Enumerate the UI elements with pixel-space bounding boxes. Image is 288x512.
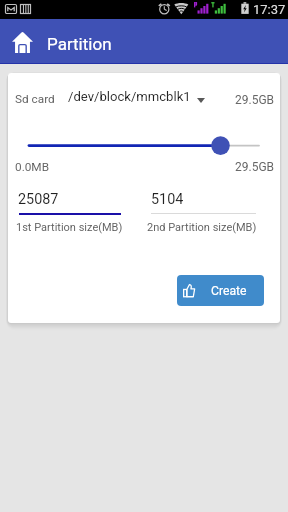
staticText: 25087: [18, 191, 59, 208]
staticText: Partition: [47, 34, 112, 54]
staticText: 2nd Partition size(MB): [147, 221, 257, 234]
staticText: /dev/block/mmcblk1: [68, 89, 191, 104]
button[interactable]: /dev/block/mmcblk1: [62, 83, 207, 107]
staticText: 29.5GB: [235, 93, 275, 107]
staticText: Create: [211, 284, 247, 298]
staticText: 17:37: [253, 2, 286, 17]
staticText: Sd card: [15, 92, 55, 106]
staticText: 0.0MB: [15, 160, 50, 174]
button[interactable]: Home: [6, 26, 38, 58]
staticText: 5104: [151, 191, 184, 208]
staticText: 1st Partition size(MB): [16, 221, 123, 234]
button[interactable]: Create: [177, 275, 264, 306]
staticText: 29.5GB: [235, 160, 275, 174]
